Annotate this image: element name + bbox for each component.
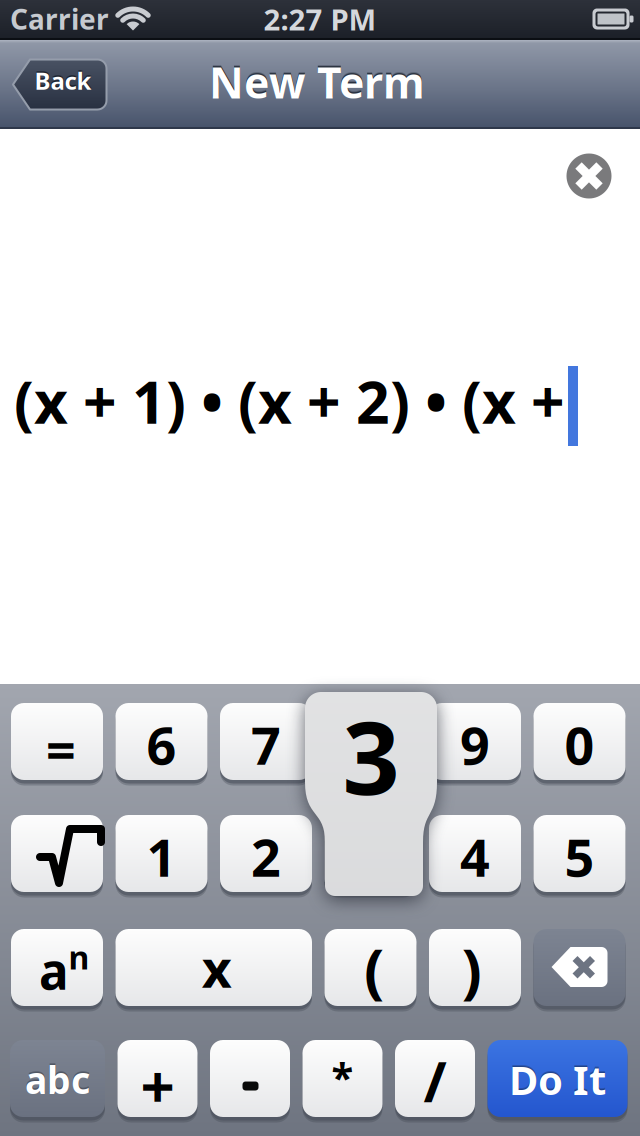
button[interactable]: = (11, 703, 103, 780)
staticText: 0 (564, 710, 594, 779)
staticText: * (331, 1050, 353, 1103)
button[interactable]: 0 (533, 703, 625, 780)
staticText: n (68, 936, 89, 978)
staticText: New Term (209, 54, 425, 110)
button[interactable]: / (395, 1040, 475, 1117)
button[interactable]: square root (11, 815, 103, 892)
staticText: Do It (509, 1053, 606, 1106)
button[interactable]: x (115, 929, 312, 1006)
button[interactable]: 8 (324, 703, 416, 780)
button[interactable]: Do It (487, 1040, 627, 1117)
button[interactable]: delete (533, 929, 625, 1006)
button[interactable]: abc (10, 1040, 105, 1117)
button[interactable]: 1 (115, 815, 207, 892)
staticText: 8 (355, 710, 385, 779)
staticText: a (39, 938, 69, 1003)
staticText: x (202, 933, 232, 1002)
button[interactable]: ) (429, 929, 521, 1006)
staticText: 7 (251, 710, 281, 779)
staticText: Back (34, 65, 91, 96)
staticText: 4 (460, 822, 490, 891)
button[interactable]: Close (566, 153, 611, 198)
staticText: ) (461, 929, 481, 1008)
button[interactable]: 9 (429, 703, 521, 780)
staticText: 5 (564, 822, 594, 891)
button[interactable]: 7 (220, 703, 312, 780)
staticText: Carrier (10, 0, 109, 38)
button[interactable]: ( (324, 929, 416, 1006)
button[interactable]: minus (210, 1040, 290, 1117)
button[interactable]: power (11, 929, 103, 1006)
staticText: + (140, 1046, 174, 1125)
staticText: abc (25, 1055, 90, 1104)
staticText: 2 (251, 822, 281, 891)
staticText: 2:27 PM (263, 0, 376, 38)
staticText: (x + 1) • (x + 2) • (x + (14, 362, 565, 440)
staticText: 6 (146, 710, 176, 779)
button[interactable]: 6 (115, 703, 207, 780)
button[interactable]: * (302, 1040, 382, 1117)
button[interactable]: 2 (220, 815, 312, 892)
button[interactable]: + (117, 1040, 197, 1117)
staticText: 3 (342, 690, 399, 822)
staticText: 1 (146, 822, 176, 891)
staticText: = (46, 715, 76, 784)
staticText: ( (364, 929, 384, 1008)
button[interactable]: Back (12, 58, 108, 111)
button[interactable]: 3 (324, 815, 416, 892)
button[interactable]: 5 (533, 815, 625, 892)
button[interactable]: 4 (429, 815, 521, 892)
staticText: 9 (460, 710, 490, 779)
staticText: / (423, 1043, 446, 1118)
